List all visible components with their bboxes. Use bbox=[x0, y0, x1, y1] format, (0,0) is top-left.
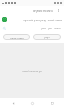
staticText: רענון bbox=[44, 36, 50, 39]
button[interactable]: Recents bbox=[45, 98, 59, 108]
button[interactable]: רענון bbox=[33, 34, 61, 40]
button[interactable]: מחובר לשרת · עדכון אחרון לפני דקה bbox=[0, 15, 64, 23]
button[interactable]: הזמנה חדשה bbox=[3, 34, 30, 40]
staticText: הזמנות ספקים bbox=[33, 9, 53, 13]
button[interactable]: Back bbox=[6, 98, 20, 108]
other: Search bbox=[3, 27, 6, 30]
staticText: חיפוש bbox=[54, 27, 61, 30]
staticText: אין פריטים להצגה bbox=[22, 69, 42, 73]
button[interactable]: Home bbox=[25, 98, 39, 108]
staticText: סינון bbox=[41, 27, 46, 30]
staticText: מחובר לשרת · עדכון אחרון לפני דקה bbox=[23, 18, 62, 21]
button[interactable]: Search bbox=[3, 25, 61, 31]
staticText: מיון bbox=[48, 27, 52, 30]
button[interactable]: More options bbox=[55, 7, 62, 14]
staticText: הזמנה חדשה bbox=[10, 36, 24, 39]
